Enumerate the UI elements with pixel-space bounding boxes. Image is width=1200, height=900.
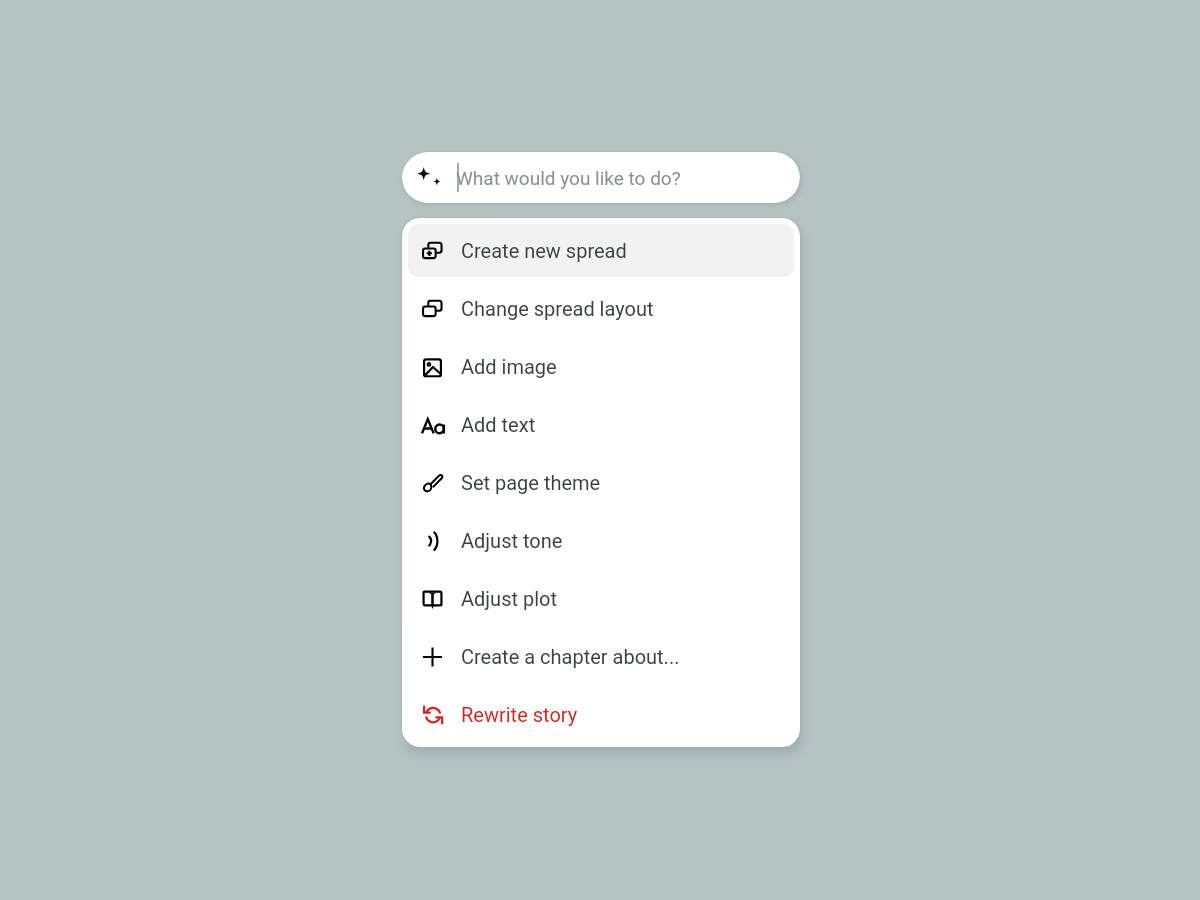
staticText: What would you like to do? [456,167,681,189]
button[interactable]: Add text [408,398,794,451]
button[interactable]: Change spread layout [408,282,794,335]
button[interactable]: Add image [408,340,794,393]
button[interactable]: Rewrite story [408,688,794,741]
staticText: Create a chapter about... [461,645,680,668]
button[interactable]: Create new spread [408,224,794,277]
button[interactable]: Adjust plot [408,572,794,625]
button[interactable]: Ask AI assistant [402,152,800,203]
button[interactable]: Set page theme [408,456,794,509]
staticText: Add image [461,355,557,378]
staticText: Set page theme [461,471,601,494]
staticText: Create new spread [461,239,627,262]
button[interactable]: Adjust tone [408,514,794,567]
staticText: Adjust plot [461,587,558,610]
staticText: Rewrite story [461,703,578,726]
staticText: Change spread layout [461,297,654,320]
staticText: Add text [461,413,536,436]
button[interactable]: Create a chapter about... [408,630,794,683]
staticText: Adjust tone [461,529,563,552]
